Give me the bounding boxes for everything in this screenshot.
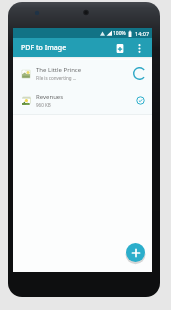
staticText: 14:07 (135, 30, 150, 37)
button[interactable] (114, 42, 126, 54)
staticText: 100% (113, 30, 126, 37)
staticText: Revenues (36, 93, 64, 101)
button[interactable]: The Little Prince (13, 60, 152, 87)
staticText: 960 KB (36, 102, 51, 108)
staticText: The Little Prince (36, 66, 82, 74)
staticText: File is converting ... (36, 75, 77, 81)
button[interactable] (126, 243, 145, 262)
staticText: PDF to Image (21, 43, 67, 53)
button[interactable]: Revenues (13, 87, 152, 114)
button[interactable] (134, 43, 144, 53)
